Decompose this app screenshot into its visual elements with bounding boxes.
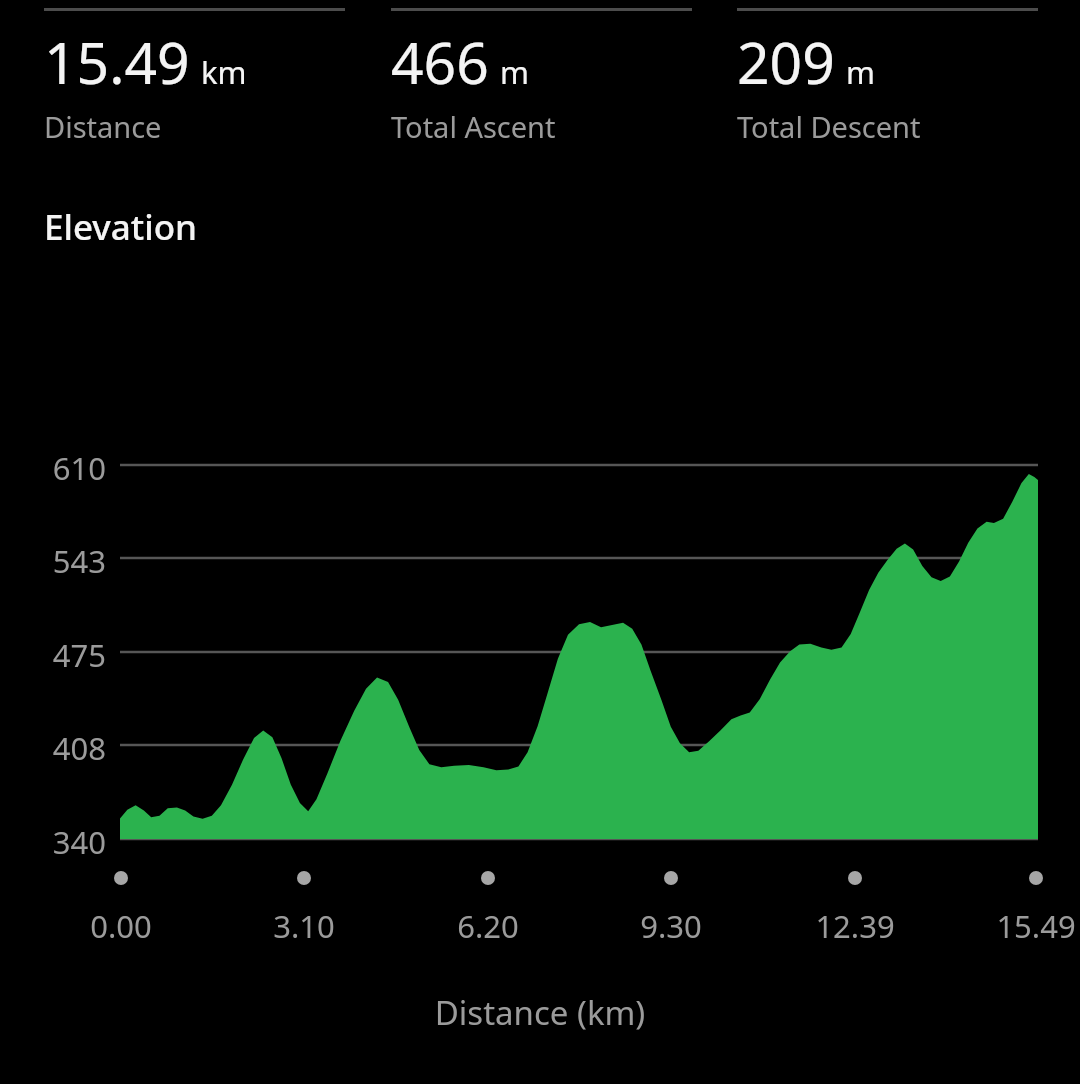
staticText: Distance (km) (0, 990, 1080, 1035)
staticText: 543 (0, 540, 106, 582)
staticText: Distance (44, 107, 162, 146)
staticText: 6.20 (388, 905, 588, 947)
staticText: 408 (0, 727, 106, 769)
staticText: 15.49 (936, 905, 1080, 947)
staticText: km (201, 51, 247, 93)
staticText: Total Descent (737, 107, 921, 146)
staticText: 209 (737, 23, 835, 101)
staticText: 0.00 (21, 905, 221, 947)
other: Elevation profile chart (0, 0, 1080, 1084)
button[interactable]: 466 (391, 0, 692, 146)
staticText: 340 (0, 821, 106, 863)
staticText: m (500, 51, 529, 93)
button[interactable]: 209 (737, 0, 1038, 146)
staticText: Elevation (44, 203, 197, 251)
staticText: 9.30 (571, 905, 771, 947)
staticText: 475 (0, 634, 106, 676)
staticText: 15.49 (44, 23, 190, 101)
button[interactable]: 15.49 (44, 0, 345, 146)
staticText: 3.10 (204, 905, 404, 947)
staticText: 466 (391, 23, 489, 101)
staticText: 12.39 (755, 905, 955, 947)
staticText: m (846, 51, 875, 93)
staticText: 610 (0, 447, 106, 489)
staticText: Total Ascent (391, 107, 556, 146)
